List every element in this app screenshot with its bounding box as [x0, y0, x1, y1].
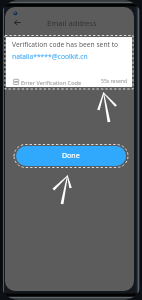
staticText: natalia*****@coolkit.cn	[12, 52, 88, 61]
staticText: 55s resend	[101, 78, 128, 85]
button[interactable]: Enter Verification Code	[12, 77, 92, 87]
staticText: Email address	[47, 18, 97, 28]
button[interactable]: 55s resend	[101, 78, 128, 85]
staticText: Enter Verification Code	[21, 79, 82, 87]
button[interactable]: Done	[16, 146, 126, 166]
staticText: Verification code has been sent to	[12, 40, 119, 49]
button[interactable]: Back	[10, 16, 24, 30]
staticText: Done	[62, 151, 80, 161]
